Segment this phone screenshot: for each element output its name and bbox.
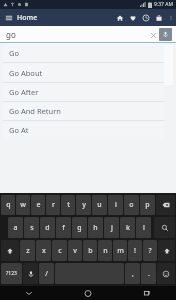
button[interactable]: Go About bbox=[3, 63, 164, 82]
button[interactable]: l bbox=[136, 217, 151, 238]
button[interactable]: x bbox=[36, 240, 51, 261]
staticText: w bbox=[20, 200, 26, 210]
staticText: Go bbox=[9, 48, 19, 58]
staticText: e bbox=[36, 200, 41, 210]
button[interactable]: Shift bbox=[158, 240, 175, 261]
button[interactable]: i bbox=[108, 195, 123, 215]
staticText: r bbox=[52, 200, 55, 210]
button[interactable]: ? bbox=[143, 240, 157, 261]
staticText: Go And Return bbox=[9, 106, 61, 116]
button[interactable]: u bbox=[92, 195, 107, 215]
button[interactable]: Favorites bbox=[126, 9, 139, 26]
staticText: k bbox=[126, 223, 130, 233]
button[interactable]: c bbox=[52, 240, 67, 261]
staticText: Go At bbox=[9, 125, 29, 135]
button[interactable]: More options bbox=[165, 9, 176, 26]
staticText: ? bbox=[148, 246, 152, 256]
staticText: l bbox=[143, 223, 145, 233]
staticText: Go About bbox=[9, 68, 43, 78]
staticText: Home bbox=[17, 13, 38, 23]
staticText: ?123 bbox=[6, 270, 17, 277]
button[interactable]: History bbox=[139, 9, 152, 26]
button[interactable]: Backspace bbox=[156, 195, 175, 215]
button[interactable]: Shift bbox=[1, 240, 19, 261]
staticText: / bbox=[45, 269, 48, 279]
button[interactable]: y bbox=[76, 195, 91, 215]
button[interactable]: z bbox=[20, 240, 35, 261]
staticText: s bbox=[30, 223, 34, 233]
button[interactable]: / bbox=[39, 263, 54, 284]
staticText: g bbox=[77, 223, 82, 233]
button[interactable]: s bbox=[24, 217, 39, 238]
button[interactable]: r bbox=[46, 195, 60, 215]
staticText: o bbox=[129, 200, 134, 210]
staticText: a bbox=[13, 223, 18, 233]
button[interactable]: Go After bbox=[3, 83, 164, 101]
button[interactable]: q bbox=[1, 195, 15, 215]
staticText: m bbox=[117, 246, 124, 256]
button[interactable]: Home bbox=[113, 9, 126, 26]
button[interactable]: f bbox=[56, 217, 71, 238]
button[interactable]: g bbox=[72, 217, 87, 238]
button[interactable]: ?123 bbox=[1, 263, 22, 284]
staticText: j bbox=[111, 223, 113, 233]
staticText: 9:37 AM bbox=[154, 1, 173, 8]
staticText: t bbox=[67, 200, 70, 210]
button[interactable]: Go And Return bbox=[3, 102, 164, 120]
button[interactable]: Open navigation drawer bbox=[0, 9, 17, 26]
button[interactable]: Cart bbox=[152, 9, 165, 26]
staticText: f bbox=[62, 223, 65, 233]
button[interactable]: n bbox=[98, 240, 112, 261]
staticText: u bbox=[97, 200, 102, 210]
button[interactable]: v bbox=[68, 240, 82, 261]
staticText: d bbox=[45, 223, 50, 233]
staticText: Go After bbox=[9, 87, 39, 97]
button[interactable]: , bbox=[125, 263, 140, 284]
staticText: c bbox=[58, 246, 62, 256]
button[interactable]: Home bbox=[58, 286, 117, 300]
staticText: , bbox=[132, 269, 134, 279]
staticText: i bbox=[115, 200, 117, 210]
staticText: p bbox=[145, 200, 150, 210]
button[interactable]: Go At bbox=[3, 121, 164, 139]
button[interactable]: h bbox=[88, 217, 103, 238]
button[interactable]: Emoji bbox=[157, 263, 175, 284]
staticText: b bbox=[88, 246, 93, 256]
button[interactable]: Back bbox=[0, 286, 58, 300]
button[interactable]: Voice input bbox=[23, 263, 38, 284]
button[interactable]: d bbox=[40, 217, 55, 238]
staticText: h bbox=[93, 223, 98, 233]
button[interactable]: Search bbox=[154, 217, 175, 238]
button[interactable]: Go bbox=[3, 43, 164, 62]
staticText: x bbox=[42, 246, 46, 256]
button[interactable]: Recent apps bbox=[117, 286, 176, 300]
staticText: z bbox=[26, 246, 30, 256]
button[interactable]: m bbox=[113, 240, 127, 261]
staticText: . bbox=[148, 269, 150, 279]
staticText: y bbox=[82, 200, 86, 210]
button[interactable]: b bbox=[83, 240, 97, 261]
button[interactable]: Voice search bbox=[159, 28, 172, 41]
button[interactable]: ! bbox=[128, 240, 142, 261]
button[interactable]: a bbox=[8, 217, 23, 238]
staticText: ! bbox=[134, 246, 136, 256]
button[interactable]: w bbox=[16, 195, 30, 215]
staticText: n bbox=[103, 246, 108, 256]
button[interactable]: j bbox=[104, 217, 119, 238]
staticText: go bbox=[6, 29, 16, 40]
button[interactable]: p bbox=[140, 195, 155, 215]
button[interactable]: Clear query bbox=[147, 29, 159, 41]
button[interactable]: t bbox=[61, 195, 75, 215]
button[interactable]: k bbox=[120, 217, 135, 238]
button[interactable]: e bbox=[31, 195, 45, 215]
button[interactable]: . bbox=[141, 263, 156, 284]
staticText: q bbox=[6, 200, 11, 210]
button[interactable]: o bbox=[124, 195, 139, 215]
staticText: v bbox=[73, 246, 77, 256]
